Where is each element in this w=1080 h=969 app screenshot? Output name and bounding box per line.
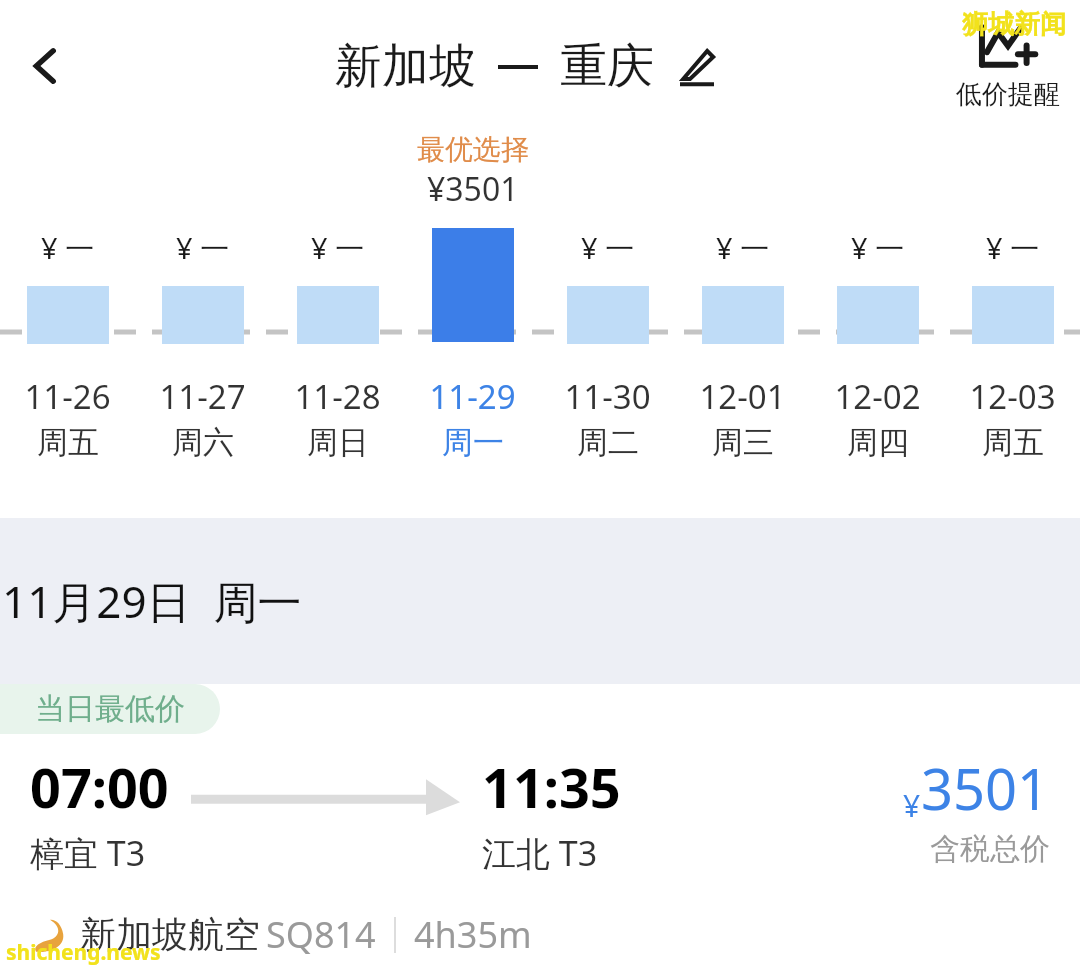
staticText: 周一 [442, 423, 504, 462]
button[interactable]: Back [10, 30, 82, 102]
button[interactable]: ¥ 一 [945, 132, 1080, 472]
button[interactable]: ¥ 一 [810, 132, 945, 472]
staticText: ¥ [903, 785, 921, 826]
staticText: 周日 [307, 423, 369, 462]
staticText: 江北 T3 [482, 830, 598, 876]
staticText: 11-30 [564, 374, 651, 419]
staticText: 周六 [172, 423, 234, 462]
staticText: ¥ 一 [176, 228, 230, 268]
staticText: 含税总价 [930, 830, 1050, 868]
staticText: 当日最低价 [35, 690, 185, 728]
staticText: ¥ 一 [41, 228, 95, 268]
staticText: 07:00 [30, 750, 169, 824]
staticText: shicheng.news [6, 938, 161, 967]
staticText: ¥3501 [427, 167, 519, 211]
button[interactable]: ¥ 一 [135, 132, 270, 472]
staticText: 新加坡 [335, 37, 476, 96]
staticText: 12-03 [969, 374, 1056, 419]
staticText: SQ814 [266, 910, 376, 959]
staticText: 4h35m [414, 910, 532, 959]
staticText: 最优选择 [417, 132, 529, 167]
staticText: ¥ 一 [986, 228, 1040, 268]
staticText: 11:35 [482, 750, 621, 824]
staticText: ¥ 一 [851, 228, 905, 268]
button[interactable]: Edit [670, 41, 722, 93]
staticText: 12-01 [699, 374, 786, 419]
staticText: 11-27 [159, 374, 246, 419]
staticText: 11-26 [24, 374, 111, 419]
button[interactable]: ¥ 一 [270, 132, 405, 472]
staticText: 周五 [982, 423, 1044, 462]
staticText: 12-02 [834, 374, 921, 419]
staticText: ¥ 一 [716, 228, 770, 268]
staticText: 低价提醒 [956, 78, 1060, 111]
staticText: 周二 [577, 423, 639, 462]
staticText: 周三 [712, 423, 774, 462]
staticText: 樟宜 T3 [30, 830, 146, 876]
staticText: 新加坡航空 [80, 912, 260, 957]
staticText: 3501 [921, 750, 1050, 826]
staticText: 11-28 [294, 374, 381, 419]
staticText: ¥ 一 [311, 228, 365, 268]
staticText: ¥ 一 [581, 228, 635, 268]
staticText: 11月29日 周一 [2, 571, 302, 631]
staticText: 11-29 [429, 374, 516, 419]
staticText: 重庆 [560, 37, 654, 96]
button[interactable]: 低价提醒 [952, 22, 1064, 111]
button[interactable]: ¥ 一 [540, 132, 675, 472]
staticText: 周四 [847, 423, 909, 462]
button[interactable]: 最优选择 [405, 132, 540, 472]
button[interactable]: ¥ 一 [675, 132, 810, 472]
button[interactable]: ¥ 一 [0, 132, 135, 472]
staticText: 周五 [37, 423, 99, 462]
staticText: 狮城新闻 [962, 8, 1066, 41]
